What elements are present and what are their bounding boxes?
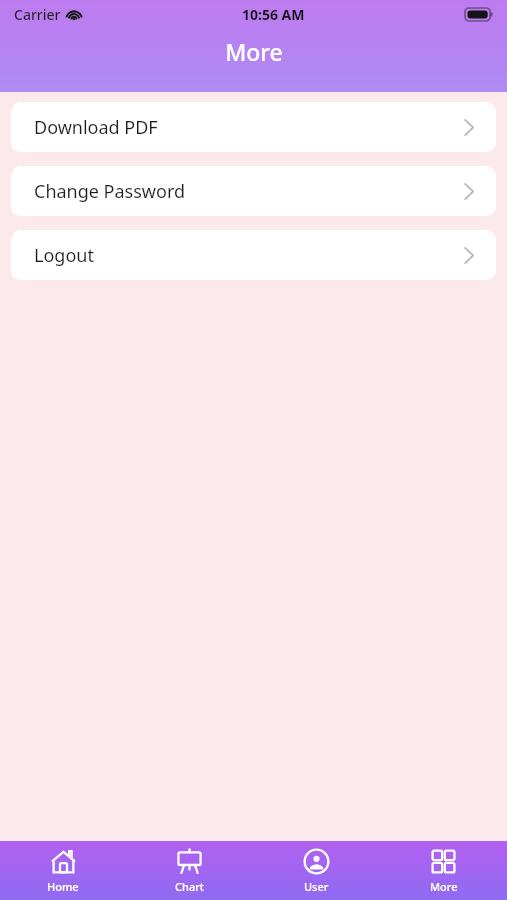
staticText: User — [304, 879, 329, 894]
button[interactable]: Chart — [126, 848, 253, 894]
staticText: Home — [47, 879, 79, 894]
staticText: Change Password — [34, 179, 186, 204]
button[interactable]: Logout — [11, 230, 496, 280]
staticText: 10:56 AM — [242, 5, 305, 24]
staticText: Download PDF — [34, 115, 158, 140]
button[interactable]: Download PDF — [11, 102, 496, 152]
button[interactable]: More — [380, 848, 507, 894]
button[interactable]: Home — [0, 848, 126, 894]
button[interactable]: User — [253, 848, 380, 894]
staticText: Carrier — [14, 5, 61, 24]
staticText: More — [225, 36, 283, 67]
staticText: Logout — [34, 243, 94, 268]
staticText: Chart — [175, 879, 205, 894]
staticText: More — [430, 879, 458, 894]
button[interactable]: Change Password — [11, 166, 496, 216]
